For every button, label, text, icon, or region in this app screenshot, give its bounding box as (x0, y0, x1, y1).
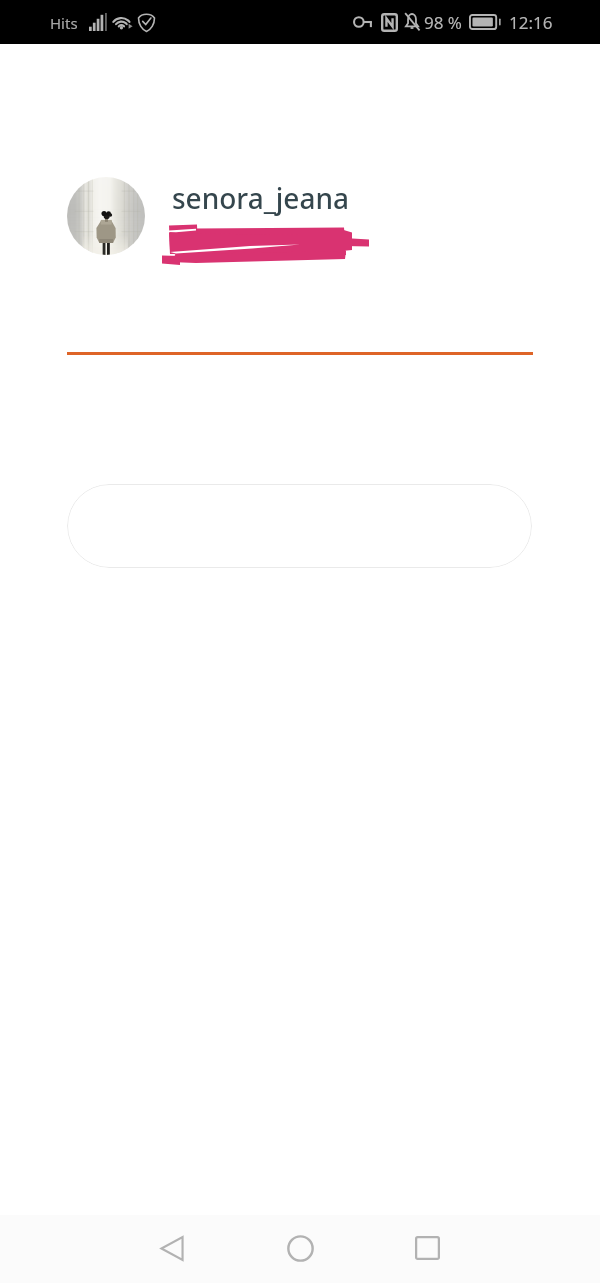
button[interactable]: Recent apps (383, 1215, 471, 1283)
staticText: 98 % (424, 11, 462, 34)
staticText: Hits (50, 13, 78, 33)
staticText: senora_jeana (172, 179, 350, 217)
button[interactable]: Home (256, 1215, 344, 1283)
button[interactable]: Input field (67, 484, 532, 568)
button[interactable]: Back (128, 1215, 216, 1283)
button[interactable]: Profile photo (67, 177, 145, 255)
staticText: 12:16 (509, 11, 553, 34)
